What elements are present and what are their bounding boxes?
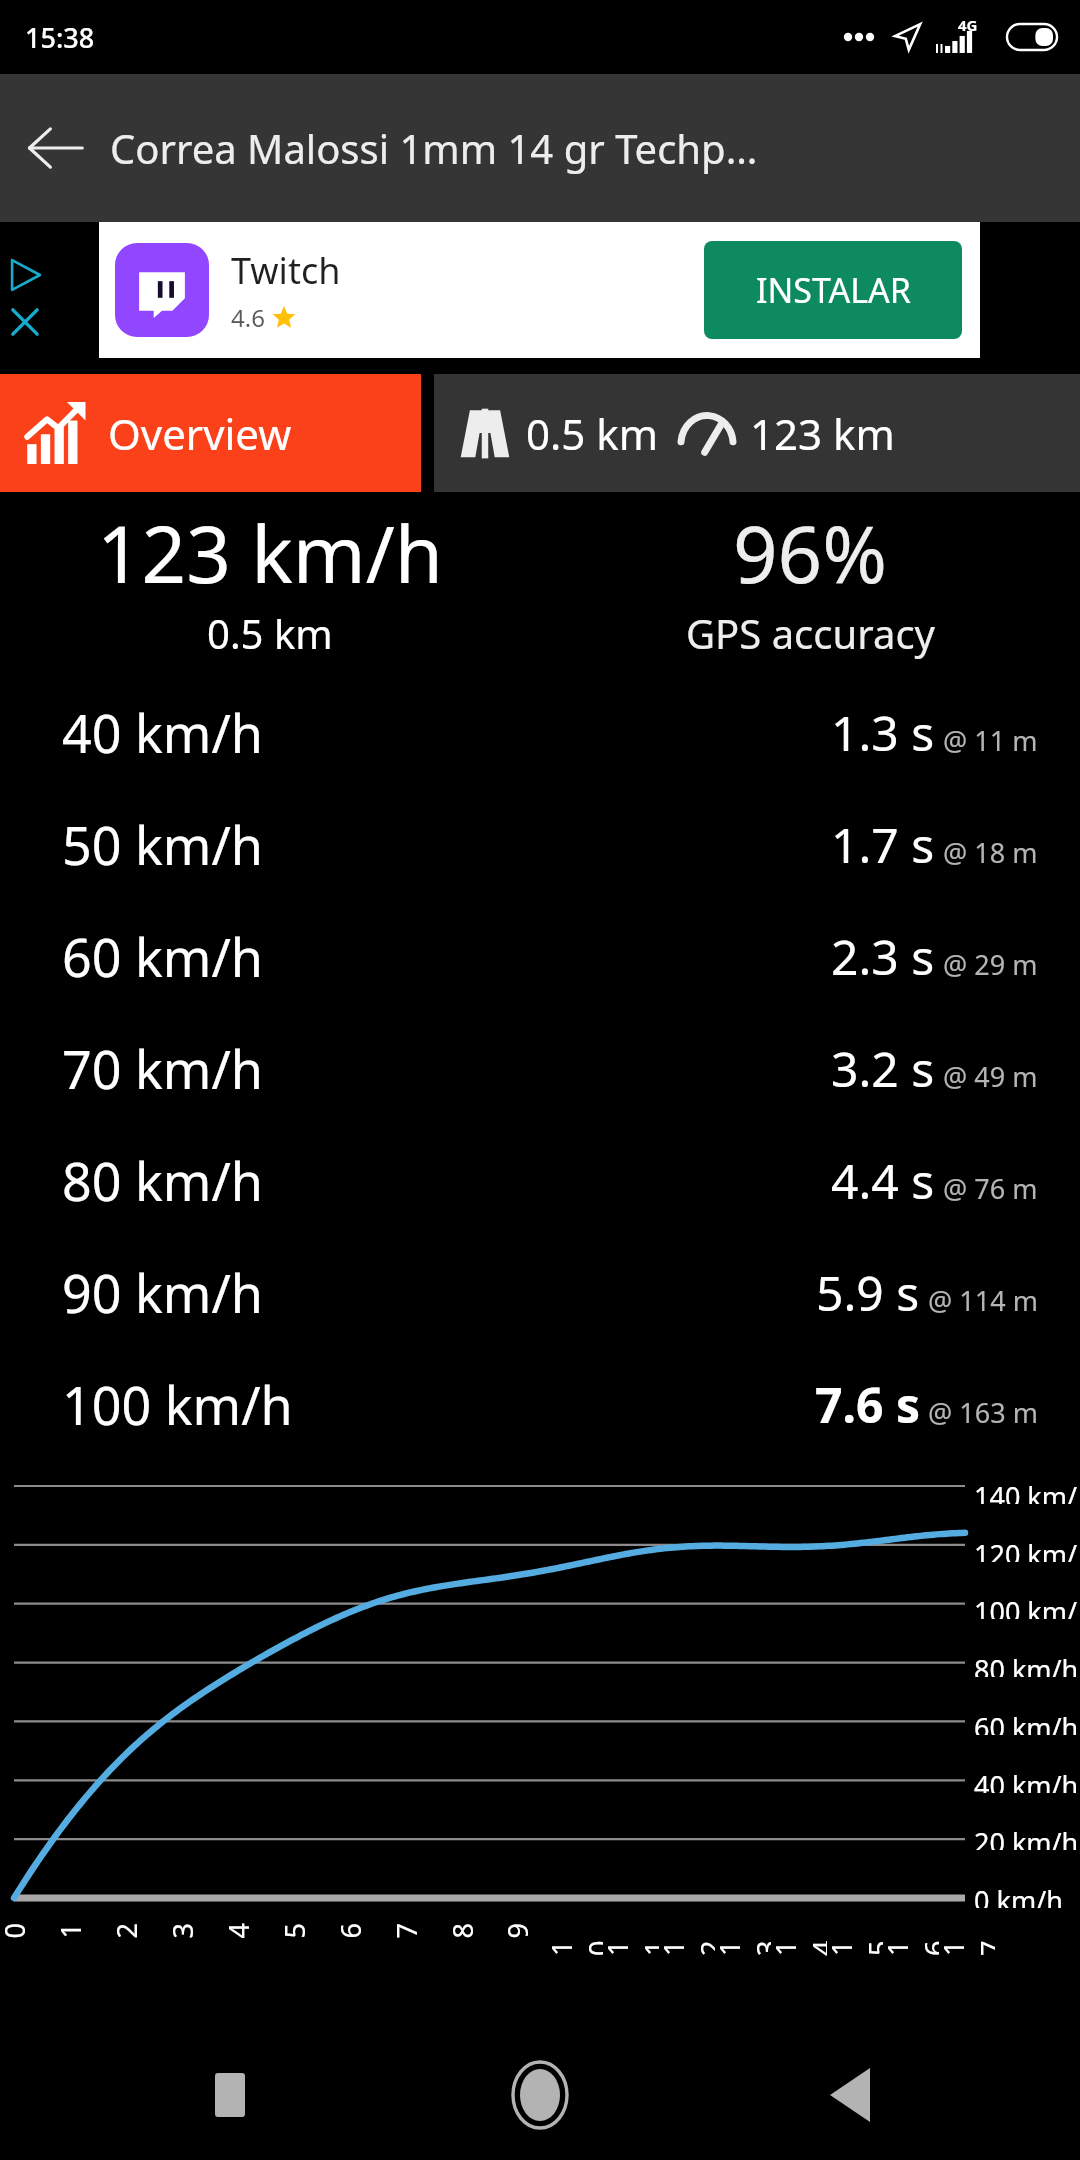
staticText: 40 km/h: [974, 1767, 1079, 1793]
staticText: 100 km/h: [974, 1593, 1080, 1619]
staticText: 90 km/h: [62, 1257, 263, 1328]
staticText: 14: [767, 1928, 827, 1956]
staticText: 123 km/h: [97, 500, 443, 606]
staticText: 16: [879, 1928, 939, 1956]
staticText: 140 km/h: [974, 1478, 1080, 1504]
staticText: @ 49 m: [943, 1058, 1038, 1095]
staticText: Twitch: [231, 246, 341, 295]
staticText: 10: [543, 1928, 603, 1956]
staticText: @ 163 m: [928, 1394, 1038, 1431]
staticText: @ 18 m: [943, 834, 1038, 871]
button[interactable]: 80 km/h: [0, 1124, 1080, 1236]
staticText: 123 km: [750, 405, 895, 462]
staticText: 4.4 s: [831, 1148, 935, 1213]
staticText: 6: [331, 1922, 368, 1938]
staticText: 4.6: [231, 301, 265, 334]
button[interactable]: 50 km/h: [0, 788, 1080, 900]
button[interactable]: Back: [770, 2030, 930, 2160]
button[interactable]: 100 km/h: [0, 1348, 1080, 1460]
button[interactable]: 90 km/h: [0, 1236, 1080, 1348]
staticText: 3: [163, 1922, 200, 1938]
staticText: Correa Malossi 1mm 14 gr Techp…: [110, 121, 1066, 175]
staticText: 4G: [958, 15, 978, 35]
staticText: 120 km/h: [974, 1536, 1080, 1562]
staticText: 2: [107, 1922, 144, 1938]
staticText: 2.3 s: [831, 924, 935, 989]
button[interactable]: 60 km/h: [0, 900, 1080, 1012]
staticText: 9: [498, 1922, 535, 1938]
staticText: 50 km/h: [62, 809, 263, 880]
staticText: @ 114 m: [928, 1282, 1038, 1319]
staticText: 3.2 s: [831, 1036, 935, 1101]
staticText: 5.9 s: [816, 1260, 920, 1325]
staticText: 4: [219, 1922, 256, 1938]
staticText: @ 29 m: [943, 946, 1038, 983]
staticText: 80 km/h: [62, 1145, 263, 1216]
staticText: 11: [599, 1928, 659, 1956]
staticText: @ 11 m: [943, 722, 1038, 759]
staticText: INSTALAR: [756, 267, 911, 313]
staticText: 1: [51, 1922, 88, 1938]
staticText: 5: [275, 1922, 312, 1938]
button[interactable]: Home: [460, 2030, 620, 2160]
staticText: 15:38: [25, 19, 95, 56]
staticText: 12: [655, 1928, 715, 1956]
button[interactable]: Recents: [150, 2030, 310, 2160]
staticText: 20 km/h: [974, 1824, 1079, 1850]
staticText: 0 km/h: [974, 1882, 1063, 1908]
staticText: 17: [935, 1928, 995, 1956]
staticText: 70 km/h: [62, 1033, 263, 1104]
staticText: 0: [0, 1922, 32, 1938]
staticText: 1.7 s: [831, 812, 935, 877]
staticText: 7: [387, 1922, 424, 1938]
staticText: 96%: [733, 500, 888, 606]
staticText: 60 km/h: [62, 921, 263, 992]
button[interactable]: INSTALAR: [704, 241, 962, 339]
staticText: 15: [823, 1928, 883, 1956]
staticText: 0.5 km: [207, 606, 333, 660]
staticText: 80 km/h: [974, 1651, 1079, 1677]
staticText: 1.3 s: [831, 700, 935, 765]
staticText: Overview: [108, 405, 292, 462]
button[interactable]: Overview: [0, 374, 421, 492]
staticText: @ 76 m: [943, 1170, 1038, 1207]
button[interactable]: 70 km/h: [0, 1012, 1080, 1124]
button[interactable]: 40 km/h: [0, 676, 1080, 788]
button[interactable]: Back: [0, 74, 110, 222]
staticText: GPS accuracy: [686, 606, 935, 660]
button[interactable]: Twitch: [99, 222, 980, 358]
button[interactable]: 0.5 km: [434, 374, 1080, 492]
staticText: 60 km/h: [974, 1709, 1079, 1735]
staticText: 13: [711, 1928, 771, 1956]
staticText: 100 km/h: [62, 1369, 293, 1440]
staticText: 8: [443, 1922, 480, 1938]
staticText: 0.5 km: [526, 405, 658, 462]
staticText: 40 km/h: [62, 697, 263, 768]
staticText: 7.6 s: [815, 1372, 920, 1437]
